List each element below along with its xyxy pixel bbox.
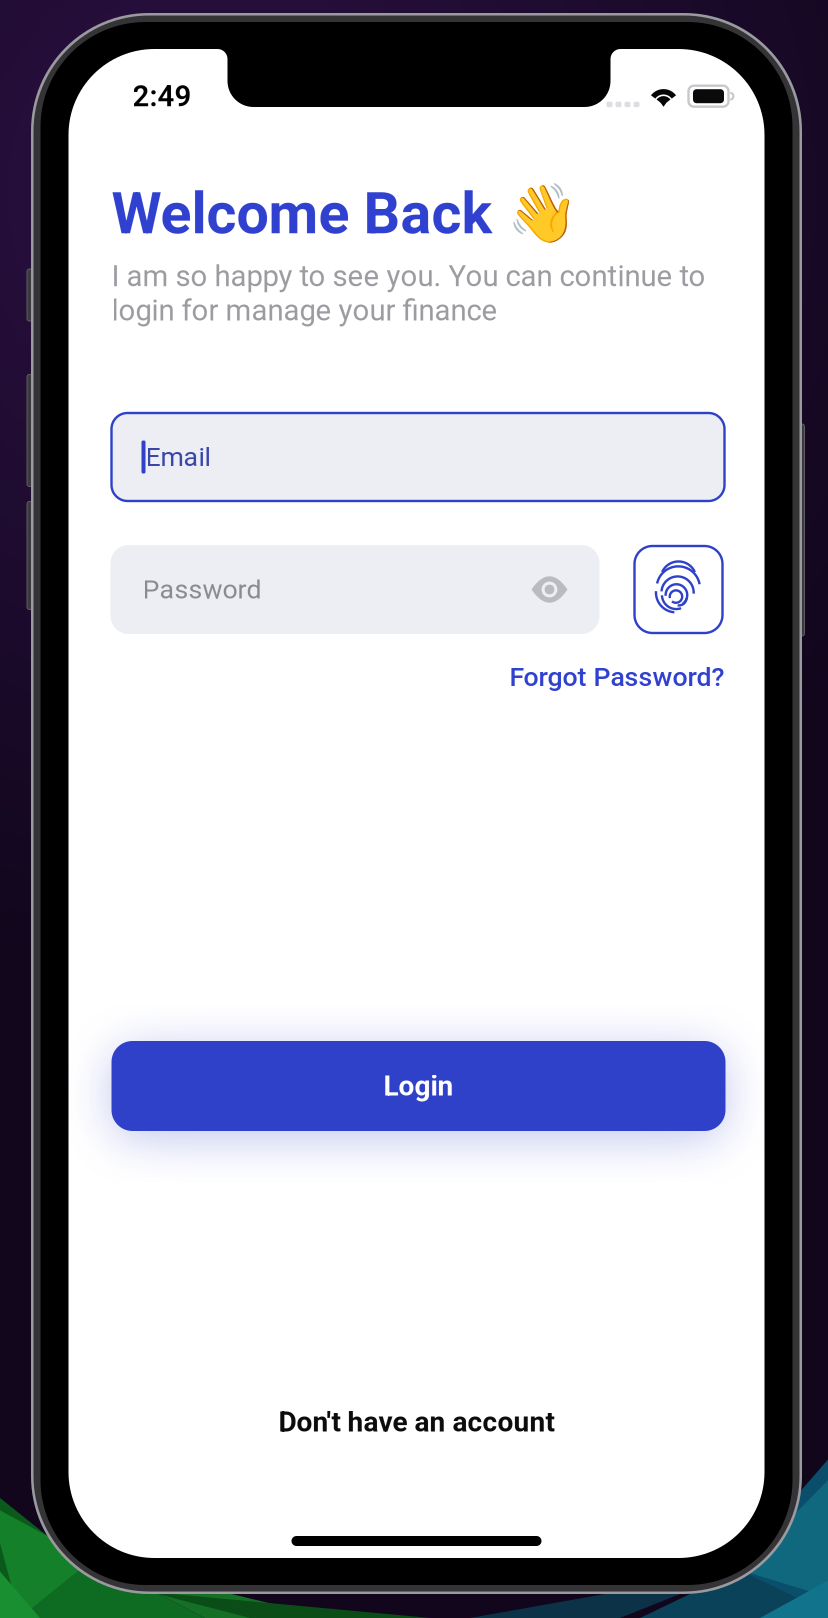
staticText: Login: [383, 1070, 453, 1102]
staticText: 2:49: [132, 79, 191, 113]
staticText: Password: [142, 574, 261, 605]
button[interactable]: Login: [111, 1041, 725, 1131]
button[interactable]: Don't have an account: [68, 1404, 764, 1440]
staticText: I am so happy to see you. You can contin…: [111, 259, 705, 328]
staticText: Email: [145, 441, 210, 473]
staticText: Don't have an account: [278, 1406, 554, 1438]
staticText: Welcome Back 👋: [111, 180, 577, 247]
button[interactable]: Sign in with Touch ID: [634, 546, 722, 633]
button[interactable]: Forgot Password?: [111, 657, 724, 697]
button[interactable]: Password: [110, 545, 599, 634]
button[interactable]: Email: [111, 413, 724, 501]
staticText: Forgot Password?: [509, 661, 724, 693]
